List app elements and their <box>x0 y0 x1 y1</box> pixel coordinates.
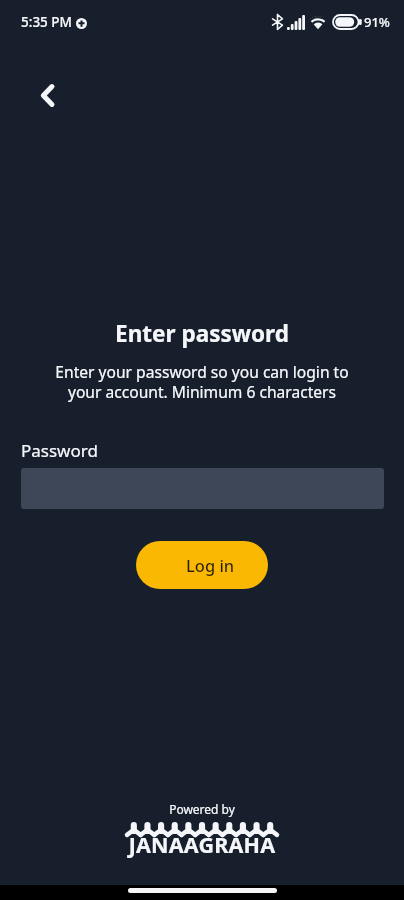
staticText: JANAAGRAHA <box>0 830 404 859</box>
staticText: Enter password <box>0 318 404 349</box>
staticText: Enter your password so you can login to … <box>52 361 352 402</box>
staticText: Password <box>21 439 98 462</box>
staticText: 5:35 PM <box>21 13 72 31</box>
staticText: 91% <box>364 13 390 31</box>
button[interactable]: Back <box>30 78 64 112</box>
button[interactable]: Log in <box>136 541 268 589</box>
staticText: Log in <box>186 554 235 576</box>
staticText: Powered by <box>0 801 404 817</box>
